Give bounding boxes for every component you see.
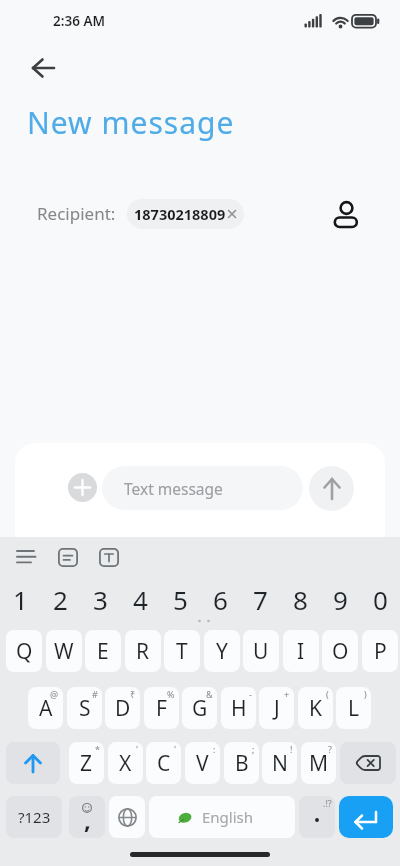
button[interactable]: C	[146, 742, 181, 784]
staticText: E	[97, 637, 109, 666]
button[interactable]	[24, 50, 64, 86]
staticText: C	[157, 749, 171, 778]
staticText: O	[332, 637, 349, 666]
button[interactable]: 7	[240, 576, 280, 622]
staticText: 3	[93, 582, 108, 617]
button[interactable]: O	[322, 630, 358, 672]
staticText: %	[167, 688, 175, 700]
button[interactable]: B	[224, 742, 259, 784]
staticText: !	[290, 743, 293, 755]
staticText: H	[231, 694, 247, 723]
button[interactable]: M	[301, 742, 336, 784]
button[interactable]: W	[46, 630, 82, 672]
staticText: Y	[216, 637, 228, 666]
button[interactable]: J	[259, 687, 294, 729]
button[interactable]: 18730218809	[127, 199, 244, 229]
button[interactable]: T	[164, 630, 200, 672]
staticText: 2	[53, 582, 68, 617]
staticText: #	[92, 688, 98, 700]
staticText: Z	[80, 749, 93, 778]
button[interactable]: D	[105, 687, 140, 729]
button[interactable]: English	[149, 796, 295, 838]
staticText: M	[309, 749, 329, 778]
staticText: New message	[27, 102, 235, 143]
button[interactable]: .!?	[299, 796, 335, 838]
button[interactable]: 8	[280, 576, 320, 622]
staticText: 18730218809	[134, 204, 226, 224]
button[interactable]: H	[221, 687, 256, 729]
button[interactable]	[68, 473, 97, 502]
staticText: 9	[333, 582, 348, 617]
button[interactable]: L	[336, 687, 371, 729]
button[interactable]: V	[185, 742, 220, 784]
staticText: :	[213, 743, 216, 755]
button[interactable]: N	[262, 742, 297, 784]
button[interactable]: Y	[204, 630, 240, 672]
staticText: 7	[253, 582, 268, 617]
button[interactable]: R	[125, 630, 161, 672]
staticText: 1	[13, 582, 28, 617]
button[interactable]: I	[283, 630, 319, 672]
staticText: X	[119, 749, 132, 778]
button[interactable]	[109, 796, 145, 838]
button[interactable]: Z	[69, 742, 104, 784]
button[interactable]	[309, 466, 354, 511]
button[interactable]: ,	[69, 796, 105, 838]
button[interactable]	[54, 544, 82, 570]
button[interactable]: F	[144, 687, 179, 729]
button[interactable]: A	[28, 687, 63, 729]
staticText: N	[272, 749, 288, 778]
button[interactable]: X	[108, 742, 143, 784]
button[interactable]: Q	[6, 630, 42, 672]
staticText: &	[206, 688, 213, 700]
staticText: V	[196, 749, 209, 778]
staticText: T	[176, 637, 188, 666]
staticText: I	[297, 637, 305, 666]
button[interactable]: 2	[40, 576, 80, 622]
button[interactable]	[12, 544, 40, 570]
button[interactable]	[340, 742, 396, 784]
staticText: '	[174, 743, 177, 755]
staticText: +	[284, 688, 290, 700]
staticText: (	[326, 688, 329, 700]
button[interactable]: 1	[0, 576, 40, 622]
staticText: English	[202, 807, 254, 827]
button[interactable]: P	[362, 630, 398, 672]
button[interactable]: 3	[80, 576, 120, 622]
button[interactable]: E	[85, 630, 121, 672]
staticText: S	[79, 694, 91, 723]
staticText: ?123	[18, 807, 51, 827]
staticText: 0	[373, 582, 388, 617]
staticText: W	[54, 637, 74, 666]
button[interactable]: 9	[320, 576, 360, 622]
button[interactable]	[95, 544, 123, 570]
staticText: Q	[16, 637, 33, 666]
staticText: .!?	[323, 797, 332, 809]
button[interactable]	[328, 196, 362, 234]
staticText: K	[309, 694, 322, 723]
button[interactable]: U	[243, 630, 279, 672]
staticText: ;	[252, 743, 255, 755]
button[interactable]: 6	[200, 576, 240, 622]
staticText: -	[249, 688, 252, 700]
button[interactable]: K	[298, 687, 333, 729]
staticText: *	[95, 743, 100, 755]
staticText: ,	[84, 803, 91, 836]
button[interactable]: G	[182, 687, 217, 729]
button[interactable]	[339, 796, 393, 838]
button[interactable]: ?123	[6, 796, 62, 838]
button[interactable]: 5	[160, 576, 200, 622]
staticText: '	[136, 743, 139, 755]
staticText: P	[374, 637, 387, 666]
button[interactable]	[6, 742, 60, 784]
staticText: G	[192, 694, 208, 723]
button[interactable]: 0	[360, 576, 400, 622]
button[interactable]: Text message	[102, 466, 303, 510]
staticText: 8	[293, 582, 308, 617]
staticText: R	[136, 637, 150, 666]
button[interactable]: S	[67, 687, 102, 729]
staticText: 6	[213, 582, 228, 617]
button[interactable]: 4	[120, 576, 160, 622]
staticText: 5	[173, 582, 188, 617]
staticText: F	[156, 694, 167, 723]
